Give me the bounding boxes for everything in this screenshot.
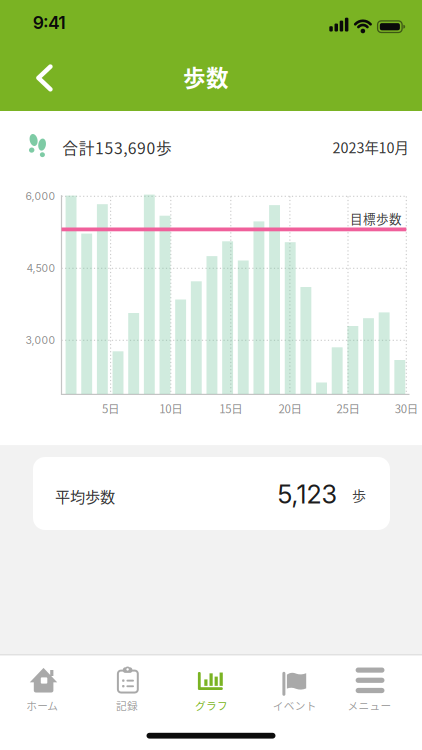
staticText: 合計153,690歩 (62, 136, 172, 159)
staticText: 目標歩数 (350, 209, 402, 227)
staticText: 9:41 (33, 12, 65, 33)
staticText: グラフ (195, 698, 228, 713)
staticText: 20日 (278, 400, 301, 417)
staticText: 5日 (102, 400, 119, 417)
staticText: 30日 (395, 400, 418, 417)
staticText: イベント (273, 698, 317, 713)
staticText: 4,500 (26, 262, 55, 275)
staticText: 10日 (159, 400, 182, 417)
staticText: ホーム (26, 698, 58, 713)
staticText: 5,123 (277, 479, 337, 510)
staticText: メニュー (347, 698, 391, 713)
staticText: 3,000 (25, 334, 55, 347)
staticText: 記録 (116, 698, 138, 713)
staticText: 平均歩数 (55, 485, 115, 507)
staticText: 6,000 (25, 190, 55, 203)
staticText: 歩数 (183, 60, 229, 93)
staticText: 15日 (219, 400, 242, 417)
staticText: 2023年10月 (332, 137, 408, 157)
staticText: 25日 (336, 400, 359, 417)
staticText: 歩 (352, 485, 366, 505)
